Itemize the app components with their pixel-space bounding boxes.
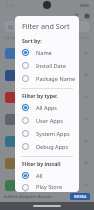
staticText: Package Name <box>36 75 76 83</box>
button[interactable]: All Apps <box>15 101 79 114</box>
staticText: All <box>36 172 43 180</box>
staticText: Sort by: <box>22 37 42 44</box>
staticText: 54 apps <box>5 35 20 40</box>
staticText: INSTALL <box>74 195 87 199</box>
button[interactable]: User Apps <box>15 114 79 127</box>
staticText: Debug Apps <box>36 143 69 151</box>
button[interactable]: Install Date <box>15 59 79 72</box>
button[interactable]: Play Store <box>15 182 79 192</box>
staticText: T <box>75 12 79 20</box>
staticText: Filter and Sort <box>22 21 70 31</box>
staticText: Name <box>36 49 52 57</box>
staticText: Install Date <box>36 62 66 70</box>
button[interactable]: Debug Apps <box>15 140 79 153</box>
staticText: User Apps <box>36 117 63 125</box>
staticText: AdMob Adaptive Banner <box>4 194 52 200</box>
staticText: Filter by install source: <box>22 160 79 167</box>
staticText: Filter by type: <box>22 92 58 99</box>
button[interactable]: System Apps <box>15 127 79 140</box>
button[interactable]: Name <box>15 46 79 59</box>
staticText: System Apps <box>36 130 70 138</box>
staticText: 24 users <box>73 35 89 40</box>
button[interactable]: All <box>15 169 79 182</box>
button[interactable]: Package Name <box>15 72 79 85</box>
staticText: Play Store <box>36 183 63 191</box>
button[interactable]: Install <box>70 193 90 200</box>
staticText: All Apps <box>36 104 58 112</box>
staticText: 1:24 <box>6 3 14 8</box>
